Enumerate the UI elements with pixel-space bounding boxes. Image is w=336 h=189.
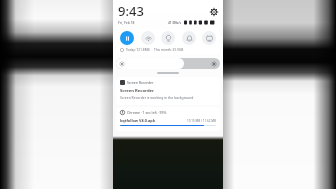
staticText: 10.15 MB / 11.62 MB	[187, 119, 216, 123]
staticText: Fri, Feb 18	[118, 20, 135, 25]
button[interactable]: Screen Recorder	[116, 77, 220, 105]
button[interactable]: Brightness	[116, 58, 220, 69]
button[interactable]: Settings	[209, 7, 218, 16]
staticText: This month: 25.9GB	[154, 48, 184, 52]
staticText: Screen Recorder is working in the backgr…	[120, 95, 194, 100]
button[interactable]: Chrome · 1 sec left · 99%	[116, 107, 220, 131]
staticText: Chrome · 1 sec left · 99%	[127, 110, 167, 115]
staticText: 41.9Kb/s	[168, 21, 182, 25]
button[interactable]: Mobile data on	[120, 31, 134, 45]
button[interactable]: Quick setting	[202, 31, 216, 45]
button[interactable]: Quick setting	[182, 31, 196, 45]
staticText: Screen Recorder	[127, 80, 154, 85]
staticText: kqtfollow V4.0.apk	[120, 118, 156, 123]
button[interactable]: Quick setting	[161, 31, 175, 45]
staticText: Today: 721.8MB	[126, 48, 150, 52]
staticText: 9:43	[118, 2, 144, 20]
button[interactable]: Quick setting	[141, 31, 155, 45]
staticText: Screen Recorder	[120, 88, 154, 94]
